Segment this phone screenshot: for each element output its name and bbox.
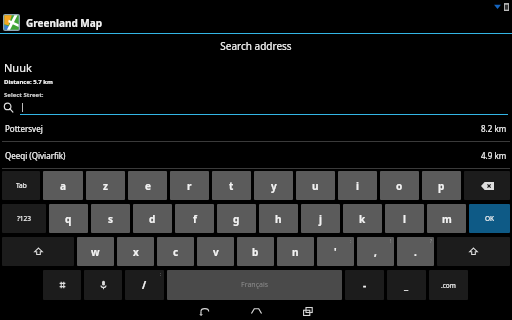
staticText: d	[149, 212, 156, 226]
staticText: v	[213, 245, 219, 259]
staticText: '	[334, 245, 337, 259]
staticText: Select Street:	[4, 91, 44, 99]
staticText: 4.9 km	[481, 150, 507, 161]
staticText: a	[60, 179, 66, 193]
staticText: Tab	[16, 181, 27, 190]
button[interactable]: d	[133, 204, 172, 233]
button[interactable]: Switch keyboard	[43, 270, 81, 300]
staticText: ?123	[17, 214, 31, 223]
staticText: :	[160, 271, 162, 277]
staticText: x	[133, 245, 139, 259]
button[interactable]: t	[212, 171, 251, 200]
staticText: ,	[374, 245, 377, 259]
staticText: -	[363, 278, 367, 292]
staticText: f	[193, 212, 197, 226]
staticText: e	[145, 179, 151, 193]
button[interactable]: i	[338, 171, 377, 200]
button[interactable]: r	[170, 171, 209, 200]
staticText: /	[142, 278, 147, 292]
staticText: ?	[430, 238, 432, 244]
button[interactable]: m	[427, 204, 466, 233]
staticText: 8.2 km	[481, 123, 507, 134]
button[interactable]: Qeeqi (Qiviarfik)	[0, 142, 512, 168]
button[interactable]: q	[49, 204, 88, 233]
staticText: .com	[441, 281, 456, 290]
button[interactable]	[0, 101, 512, 115]
staticText: j	[319, 212, 322, 226]
button[interactable]: Pottersvej	[0, 115, 512, 141]
button[interactable]: Home	[243, 302, 269, 320]
staticText: Français	[241, 280, 269, 290]
staticText: Qeeqi (Qiviarfik)	[5, 150, 66, 161]
staticText: y	[271, 179, 277, 193]
button[interactable]: n	[277, 237, 314, 266]
button[interactable]: y	[254, 171, 293, 200]
button[interactable]: v	[197, 237, 234, 266]
button[interactable]: Back	[191, 302, 217, 320]
button[interactable]: OK	[469, 204, 510, 233]
staticText: c	[173, 245, 179, 259]
button[interactable]: b	[237, 237, 274, 266]
button[interactable]: Français	[167, 270, 342, 300]
button[interactable]: f	[175, 204, 214, 233]
staticText: Distance: 5.7 km	[4, 78, 53, 86]
staticText: o	[396, 179, 403, 193]
button[interactable]: c	[157, 237, 194, 266]
staticText: k	[359, 212, 366, 226]
button[interactable]: Tab	[2, 171, 40, 200]
button[interactable]: Voice input	[84, 270, 122, 300]
staticText: g	[233, 212, 240, 226]
staticText: p	[438, 179, 445, 193]
button[interactable]: Backspace	[464, 171, 510, 200]
staticText: t	[229, 179, 234, 193]
button[interactable]: h	[259, 204, 298, 233]
button[interactable]: :	[125, 270, 164, 300]
staticText: Search address	[0, 39, 512, 53]
staticText: OK	[485, 214, 495, 223]
button[interactable]: !	[357, 237, 394, 266]
staticText: Greenland Map	[26, 16, 103, 30]
button[interactable]: .com	[429, 270, 468, 300]
staticText: _	[404, 278, 409, 292]
button[interactable]: l	[385, 204, 424, 233]
staticText: :	[350, 238, 352, 244]
staticText: l	[403, 212, 406, 226]
staticText: h	[275, 212, 282, 226]
button[interactable]: -	[345, 270, 384, 300]
button[interactable]: _	[387, 270, 426, 300]
button[interactable]: x	[117, 237, 154, 266]
button[interactable]: Shift	[437, 237, 510, 266]
staticText: i	[356, 179, 359, 193]
button[interactable]: u	[296, 171, 335, 200]
staticText: Pottersvej	[5, 123, 43, 134]
button[interactable]: ?	[397, 237, 434, 266]
staticText: w	[91, 245, 100, 259]
button[interactable]: z	[86, 171, 125, 200]
staticText: u	[312, 179, 319, 193]
staticText: n	[292, 245, 299, 259]
button[interactable]: g	[217, 204, 256, 233]
staticText: !	[390, 238, 392, 244]
button[interactable]: Recent apps	[295, 302, 321, 320]
button[interactable]: j	[301, 204, 340, 233]
staticText: Nuuk	[4, 60, 32, 75]
button[interactable]: :	[317, 237, 354, 266]
staticText: r	[187, 179, 192, 193]
button[interactable]: e	[128, 171, 167, 200]
staticText: s	[108, 212, 114, 226]
button[interactable]: p	[422, 171, 461, 200]
button[interactable]: k	[343, 204, 382, 233]
button[interactable]: s	[91, 204, 130, 233]
button[interactable]: w	[77, 237, 114, 266]
staticText: .	[414, 245, 417, 259]
staticText: q	[65, 212, 72, 226]
button[interactable]: ?123	[2, 204, 46, 233]
button[interactable]: o	[380, 171, 419, 200]
staticText: b	[252, 245, 259, 259]
button[interactable]: a	[43, 171, 83, 200]
staticText: m	[442, 212, 452, 226]
button[interactable]: Shift	[2, 237, 74, 266]
staticText: z	[103, 179, 108, 193]
